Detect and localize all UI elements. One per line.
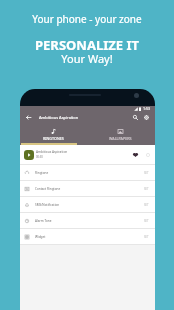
staticText: SET (144, 219, 149, 223)
staticText: SET (144, 203, 149, 207)
staticText: WALLPAPERS (109, 136, 132, 141)
staticText: Ringtone (35, 171, 49, 175)
staticText: Ambitious Aspiration (36, 150, 68, 154)
staticText: SMS/Notification (35, 203, 60, 207)
staticText: Your phone - your zone (32, 12, 142, 26)
button[interactable]: RINGTONES (20, 123, 86, 145)
staticText: 1:53 (143, 106, 151, 111)
button[interactable]: More options (143, 150, 152, 159)
button[interactable]: Alarm Tone (20, 213, 155, 228)
button[interactable]: Ambitious Aspiration (20, 145, 155, 164)
staticText: Widget (35, 235, 46, 239)
button[interactable]: Widget (20, 229, 155, 244)
staticText: SET (144, 171, 149, 175)
staticText: Ambitious Aspiration (39, 115, 79, 120)
staticText: RINGTONES (43, 136, 64, 141)
button[interactable]: Settings (141, 112, 152, 123)
button[interactable]: Contact Ringtone (20, 181, 155, 196)
button[interactable]: WALLPAPERS (86, 123, 155, 145)
staticText: SET (144, 187, 149, 191)
staticText: Alarm Tone (35, 219, 52, 223)
button[interactable]: SMS/Notification (20, 197, 155, 212)
button[interactable]: Search (130, 112, 141, 123)
staticText: PERSONALIZE IT (35, 36, 139, 54)
staticText: Your Way! (61, 51, 113, 66)
button[interactable]: Favorite (131, 150, 140, 159)
button[interactable]: Back (26, 112, 38, 123)
staticText: Contact Ringtone (35, 187, 61, 191)
button[interactable]: Ringtone (20, 165, 155, 180)
staticText: 00:30 (36, 155, 43, 159)
staticText: SET (144, 235, 149, 239)
